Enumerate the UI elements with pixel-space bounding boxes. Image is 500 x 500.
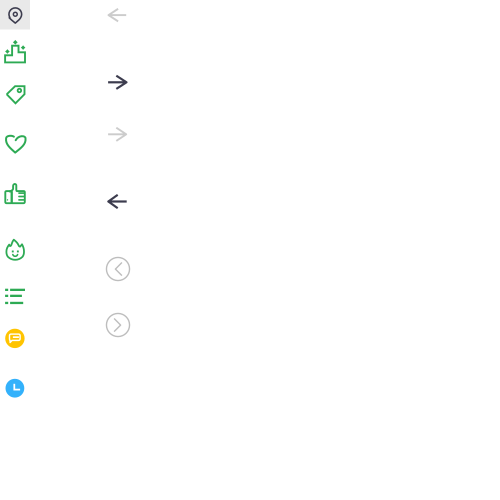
button[interactable]: Like [0,0,500,500]
button[interactable]: Location [0,0,500,500]
button[interactable]: Trending [0,0,500,500]
button[interactable]: Recent [0,0,500,500]
button[interactable]: Leaderboard [0,0,500,500]
button[interactable]: Back [0,0,500,500]
button[interactable]: Tags [0,0,500,500]
button[interactable]: Next page [0,0,500,500]
button[interactable]: Next [0,0,500,500]
button[interactable]: Previous page [0,0,500,500]
button[interactable]: Previous [0,0,500,500]
button[interactable]: Messages [0,0,500,500]
button[interactable]: List [0,0,500,500]
button[interactable]: Forward [0,0,500,500]
button[interactable]: Favorites [0,0,500,500]
